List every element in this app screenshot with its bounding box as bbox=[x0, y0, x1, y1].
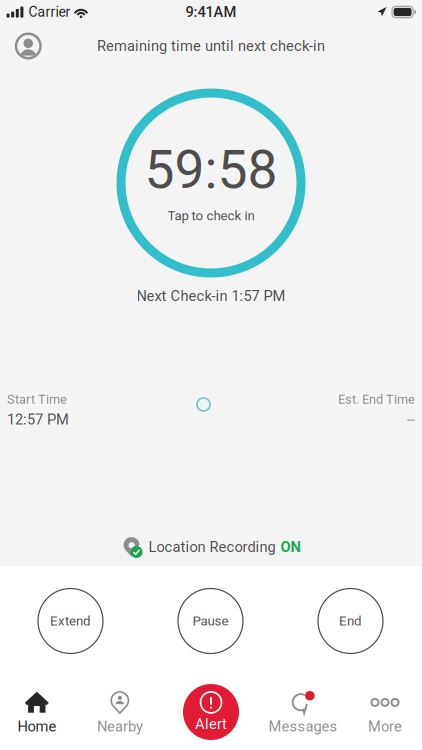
button[interactable]: Messages bbox=[265, 685, 341, 737]
staticText: ON bbox=[280, 538, 300, 556]
staticText: Remaining time until next check-in bbox=[97, 37, 325, 55]
button[interactable]: Profile bbox=[0, 25, 48, 67]
staticText: End bbox=[339, 613, 362, 629]
button[interactable]: 59:58 bbox=[116, 88, 305, 277]
staticText: Carrier bbox=[28, 4, 70, 20]
staticText: 12:57 PM bbox=[7, 411, 69, 428]
staticText: Next Check-in 1:57 PM bbox=[136, 287, 285, 305]
staticText: Location Recording bbox=[148, 538, 275, 556]
button[interactable]: Home bbox=[0, 685, 75, 737]
button[interactable]: Alert bbox=[183, 684, 239, 740]
staticText: Est. End Time bbox=[338, 392, 415, 407]
staticText: -- bbox=[407, 411, 415, 428]
staticText: Start Time bbox=[7, 392, 67, 407]
button[interactable]: Pause bbox=[178, 588, 243, 653]
staticText: 9:41AM bbox=[185, 3, 236, 21]
staticText: Pause bbox=[192, 613, 228, 629]
staticText: Extend bbox=[50, 613, 91, 629]
button[interactable]: More bbox=[347, 685, 422, 737]
staticText: Home bbox=[17, 718, 56, 735]
staticText: Messages bbox=[268, 718, 337, 735]
staticText: Tap to check in bbox=[167, 208, 254, 223]
button[interactable]: Nearby bbox=[82, 685, 158, 737]
staticText: Alert bbox=[195, 715, 227, 733]
staticText: More bbox=[368, 718, 402, 735]
button[interactable]: Extend bbox=[38, 588, 103, 653]
staticText: Nearby bbox=[97, 718, 143, 735]
staticText: 59:58 bbox=[144, 138, 277, 201]
button[interactable]: End bbox=[318, 588, 383, 653]
